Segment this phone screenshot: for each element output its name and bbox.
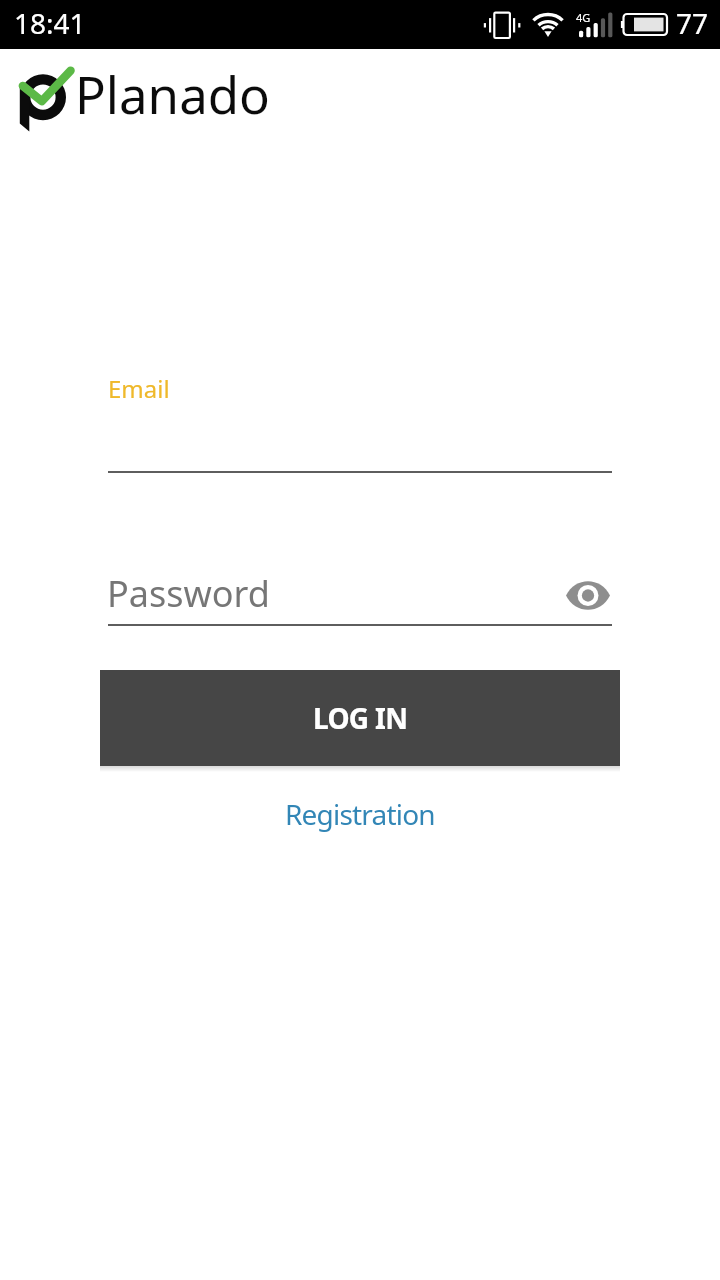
button[interactable]: Registration	[265, 786, 455, 842]
staticText: 18:41	[14, 4, 86, 42]
button[interactable]: Show password	[558, 565, 618, 626]
staticText: 77	[676, 4, 709, 42]
staticText: Password	[107, 569, 270, 618]
button[interactable]: Password	[108, 568, 612, 626]
staticText: 4G	[576, 10, 591, 25]
button[interactable]: LOG IN	[100, 670, 620, 766]
staticText: Planado	[75, 59, 270, 128]
staticText: Email	[108, 372, 170, 405]
staticText: LOG IN	[313, 699, 408, 737]
button[interactable]: Email	[108, 372, 612, 473]
staticText: Registration	[285, 795, 435, 833]
